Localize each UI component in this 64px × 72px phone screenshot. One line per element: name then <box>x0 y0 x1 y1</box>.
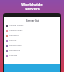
button[interactable]: Germany <box>4 33 60 38</box>
staticText: Canada <box>9 54 18 57</box>
staticText: Singapore <box>9 49 20 52</box>
button[interactable]: France <box>4 38 60 43</box>
staticText: United States <box>9 24 24 27</box>
button[interactable]: Canada <box>4 53 60 58</box>
button[interactable]: Singapore <box>4 48 60 53</box>
button[interactable]: United States <box>4 23 60 28</box>
button[interactable]: Switzerland <box>4 43 60 48</box>
button[interactable]: Netherlands <box>4 28 60 33</box>
staticText: France <box>9 39 17 42</box>
staticText: Netherlands <box>9 29 23 32</box>
staticText: Germany <box>9 34 19 37</box>
staticText: Server list <box>26 19 39 23</box>
staticText: servers <box>25 6 40 10</box>
staticText: Switzerland <box>9 44 22 47</box>
staticText: Worldwide <box>21 2 43 6</box>
